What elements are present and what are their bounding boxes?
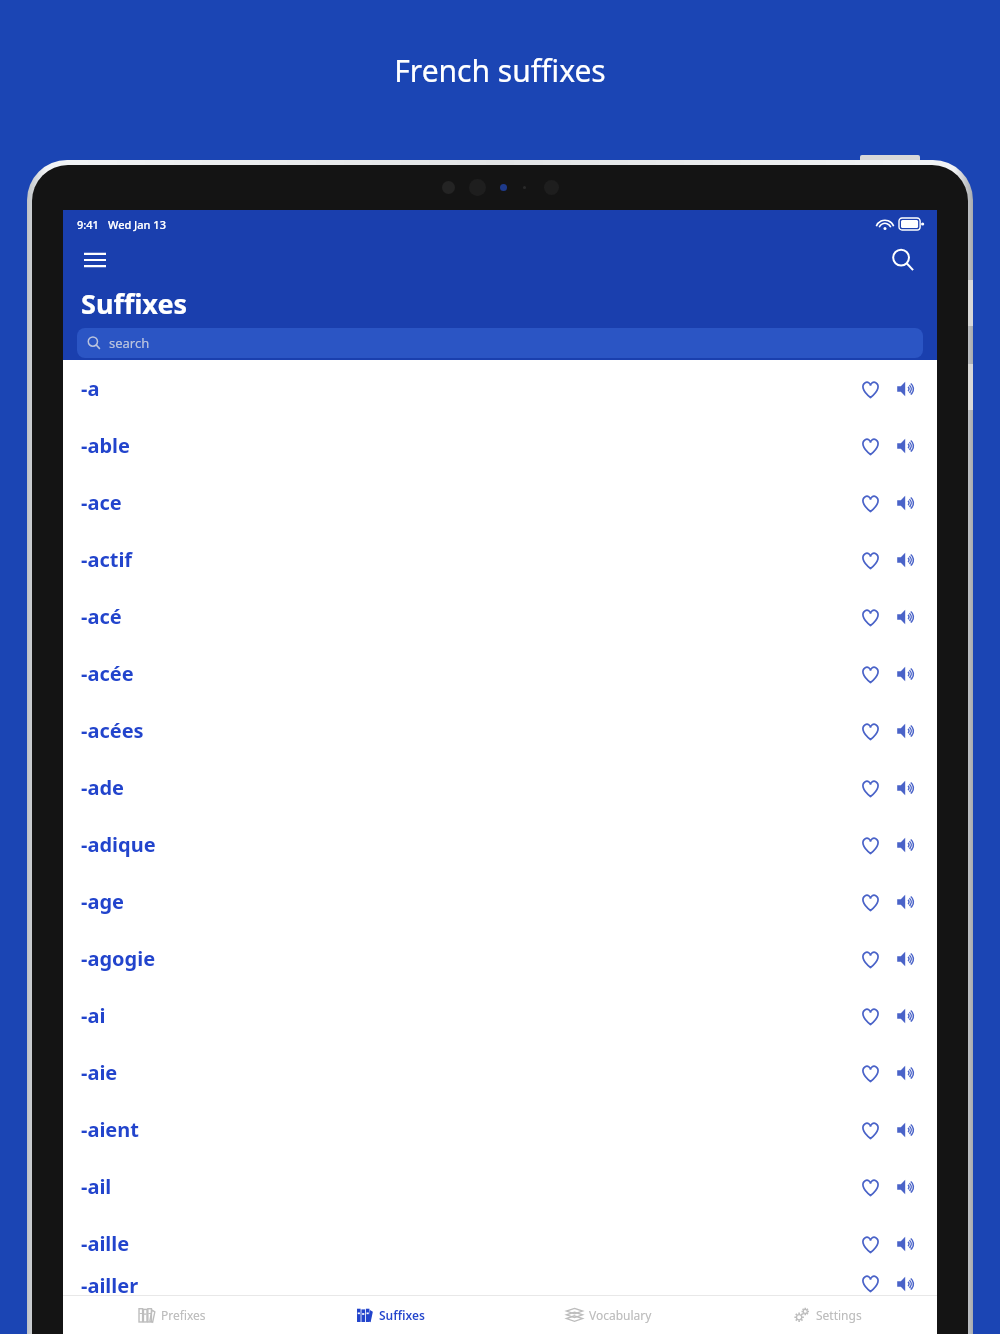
- button[interactable]: search: [77, 328, 923, 358]
- staticText: -ace: [81, 489, 122, 516]
- staticText: Vocabulary: [589, 1307, 652, 1323]
- button[interactable]: Play pronunciation: [889, 543, 923, 577]
- button[interactable]: Favourite: [853, 429, 887, 463]
- button[interactable]: Play pronunciation: [889, 1170, 923, 1204]
- button[interactable]: Play pronunciation: [889, 714, 923, 748]
- button[interactable]: Settings: [718, 1295, 937, 1334]
- button[interactable]: Play pronunciation: [889, 1113, 923, 1147]
- staticText: -a: [81, 375, 100, 402]
- button[interactable]: Play pronunciation: [889, 942, 923, 976]
- button[interactable]: -a: [63, 360, 937, 417]
- button[interactable]: Search: [883, 240, 923, 280]
- button[interactable]: Favourite: [853, 1170, 887, 1204]
- button[interactable]: Play pronunciation: [889, 372, 923, 406]
- staticText: Suffixes: [379, 1307, 425, 1323]
- button[interactable]: -aille: [63, 1215, 937, 1272]
- staticText: Suffixes: [81, 285, 188, 322]
- button[interactable]: -able: [63, 417, 937, 474]
- button[interactable]: -actif: [63, 531, 937, 588]
- button[interactable]: Favourite: [853, 942, 887, 976]
- button[interactable]: Favourite: [853, 1056, 887, 1090]
- button[interactable]: Play pronunciation: [889, 1272, 923, 1295]
- button[interactable]: -acée: [63, 645, 937, 702]
- button[interactable]: -agogie: [63, 930, 937, 987]
- button[interactable]: -ade: [63, 759, 937, 816]
- button[interactable]: -acées: [63, 702, 937, 759]
- button[interactable]: Favourite: [853, 999, 887, 1033]
- staticText: -agogie: [81, 945, 156, 972]
- button[interactable]: Favourite: [853, 1272, 887, 1295]
- button[interactable]: -ai: [63, 987, 937, 1044]
- staticText: -acée: [81, 660, 134, 687]
- button[interactable]: Play pronunciation: [889, 828, 923, 862]
- button[interactable]: Favourite: [853, 1113, 887, 1147]
- button[interactable]: -ailler: [63, 1272, 937, 1295]
- staticText: -adique: [81, 831, 156, 858]
- button[interactable]: Favourite: [853, 1227, 887, 1261]
- staticText: Wed Jan 13: [108, 217, 166, 232]
- button[interactable]: Play pronunciation: [889, 885, 923, 919]
- button[interactable]: Play pronunciation: [889, 600, 923, 634]
- staticText: -actif: [81, 546, 133, 573]
- staticText: -acé: [81, 603, 122, 630]
- button[interactable]: -acé: [63, 588, 937, 645]
- button[interactable]: Menu: [77, 242, 113, 278]
- button[interactable]: -age: [63, 873, 937, 930]
- staticText: Settings: [816, 1307, 862, 1323]
- button[interactable]: Favourite: [853, 543, 887, 577]
- button[interactable]: Play pronunciation: [889, 486, 923, 520]
- staticText: -age: [81, 888, 124, 915]
- button[interactable]: Favourite: [853, 828, 887, 862]
- button[interactable]: -aient: [63, 1101, 937, 1158]
- button[interactable]: Play pronunciation: [889, 1056, 923, 1090]
- button[interactable]: Suffixes: [281, 1295, 499, 1334]
- staticText: search: [109, 334, 150, 352]
- staticText: -ai: [81, 1002, 106, 1029]
- button[interactable]: Play pronunciation: [889, 429, 923, 463]
- staticText: -aie: [81, 1059, 118, 1086]
- button[interactable]: Prefixes: [63, 1295, 281, 1334]
- staticText: -ail: [81, 1173, 112, 1200]
- button[interactable]: Favourite: [853, 372, 887, 406]
- staticText: -ailler: [81, 1272, 139, 1295]
- button[interactable]: Favourite: [853, 714, 887, 748]
- button[interactable]: Favourite: [853, 486, 887, 520]
- button[interactable]: Vocabulary: [499, 1295, 718, 1334]
- staticText: 9:41: [77, 217, 99, 232]
- staticText: -aille: [81, 1230, 130, 1257]
- button[interactable]: Favourite: [853, 600, 887, 634]
- button[interactable]: Favourite: [853, 885, 887, 919]
- staticText: -ade: [81, 774, 124, 801]
- button[interactable]: Favourite: [853, 657, 887, 691]
- staticText: -acées: [81, 717, 144, 744]
- button[interactable]: Play pronunciation: [889, 657, 923, 691]
- button[interactable]: -ail: [63, 1158, 937, 1215]
- staticText: Prefixes: [161, 1307, 206, 1323]
- staticText: French suffixes: [394, 50, 606, 91]
- button[interactable]: Play pronunciation: [889, 1227, 923, 1261]
- button[interactable]: Play pronunciation: [889, 999, 923, 1033]
- button[interactable]: Play pronunciation: [889, 771, 923, 805]
- staticText: -aient: [81, 1116, 139, 1143]
- button[interactable]: -adique: [63, 816, 937, 873]
- button[interactable]: -ace: [63, 474, 937, 531]
- button[interactable]: -aie: [63, 1044, 937, 1101]
- staticText: -able: [81, 432, 130, 459]
- button[interactable]: Favourite: [853, 771, 887, 805]
